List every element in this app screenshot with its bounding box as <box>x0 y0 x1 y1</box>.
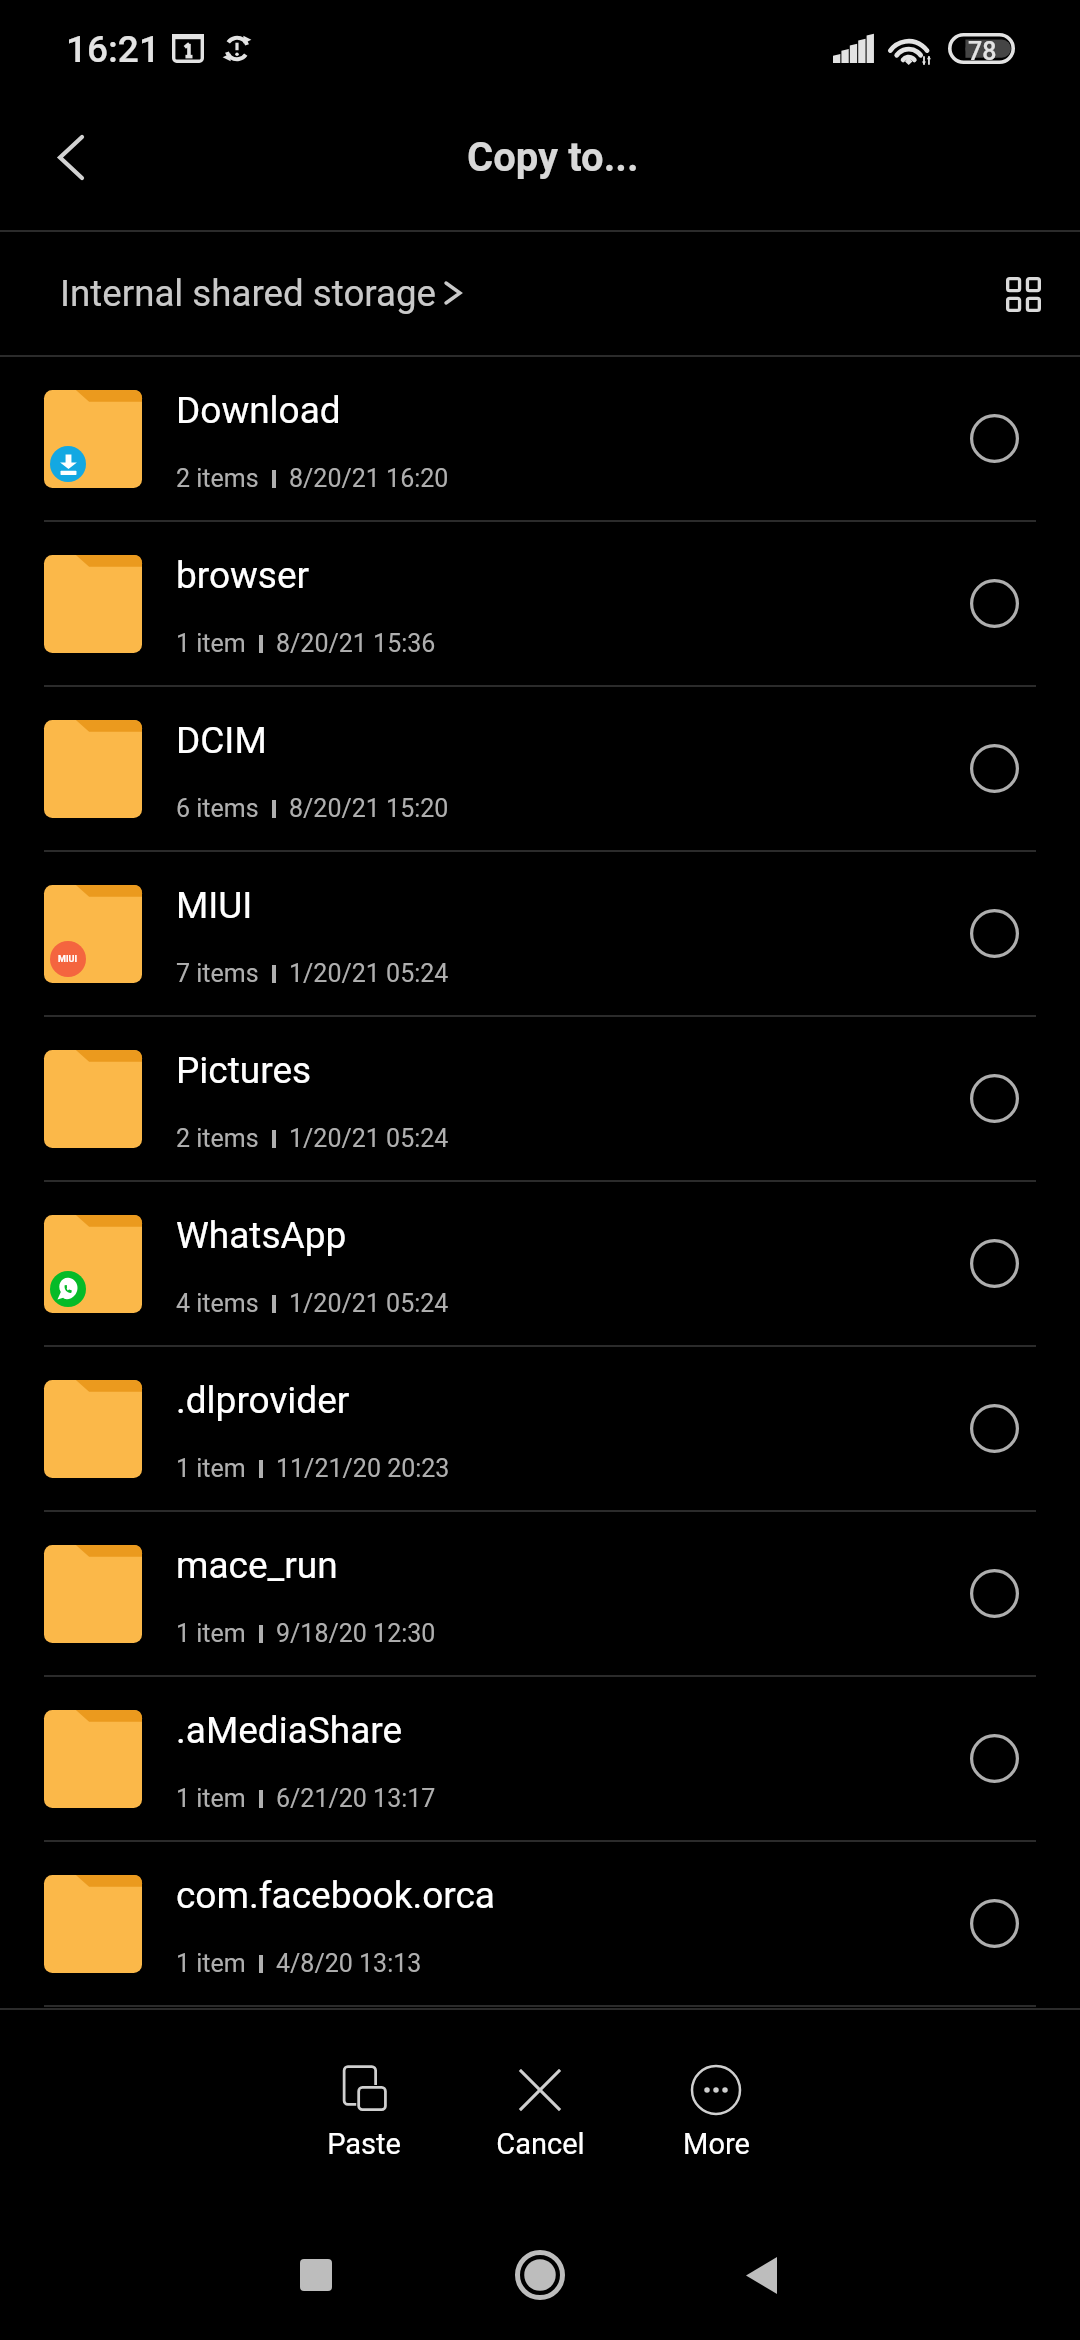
staticText: 78 <box>968 37 997 66</box>
button[interactable]: More <box>641 2010 791 2161</box>
staticText: .dlprovider <box>176 1379 350 1422</box>
staticText: 6 items <box>176 794 259 823</box>
staticText: More <box>683 2127 750 2161</box>
staticText: 1 item <box>176 1454 246 1483</box>
staticText: 8/20/21 15:36 <box>276 629 436 658</box>
button[interactable]: Pictures <box>0 1017 1080 1180</box>
button[interactable]: .aMediaShare <box>0 1677 1080 1840</box>
button[interactable]: com.facebook.orca <box>0 1842 1080 2005</box>
staticText: 4/8/20 13:13 <box>276 1949 422 1978</box>
button[interactable]: Recents <box>266 2225 366 2325</box>
staticText: Cancel <box>496 2127 585 2161</box>
staticText: 11/21/20 20:23 <box>276 1454 450 1483</box>
button[interactable]: Cancel <box>465 2010 615 2161</box>
staticText: DCIM <box>176 719 267 762</box>
button[interactable]: mace_run <box>0 1512 1080 1675</box>
staticText: 2 items <box>176 1124 259 1153</box>
button[interactable]: WhatsApp <box>0 1182 1080 1345</box>
staticText: com.facebook.orca <box>176 1874 495 1917</box>
staticText: browser <box>176 554 310 597</box>
staticText: .aMediaShare <box>176 1709 403 1752</box>
staticText: 6/21/20 13:17 <box>276 1784 436 1813</box>
button[interactable]: browser <box>0 522 1080 685</box>
staticText: 1 item <box>176 629 246 658</box>
staticText: mace_run <box>176 1544 338 1587</box>
staticText: 1/20/21 05:24 <box>289 959 449 988</box>
button[interactable]: DCIM <box>0 687 1080 850</box>
staticText: Download <box>176 389 341 432</box>
button[interactable]: Select Download <box>908 357 1080 520</box>
button[interactable]: Home <box>490 2225 590 2325</box>
staticText: Internal shared storage <box>60 272 437 315</box>
staticText: 9/18/20 12:30 <box>276 1619 436 1648</box>
staticText: 1/20/21 05:24 <box>289 1289 449 1318</box>
button[interactable]: Download <box>0 357 1080 520</box>
button[interactable]: Paste <box>289 2010 439 2161</box>
button[interactable]: Select Pictures <box>908 1017 1080 1180</box>
staticText: 16:21 <box>66 28 160 71</box>
button[interactable]: Select WhatsApp <box>908 1182 1080 1345</box>
staticText: 1 item <box>176 1619 246 1648</box>
staticText: Copy to... <box>467 134 639 181</box>
staticText: 1 item <box>176 1784 246 1813</box>
button[interactable]: Select DCIM <box>908 687 1080 850</box>
button[interactable]: Select browser <box>908 522 1080 685</box>
staticText: 8/20/21 15:20 <box>289 794 449 823</box>
button[interactable]: MIUI <box>0 852 1080 1015</box>
staticText: 1/20/21 05:24 <box>289 1124 449 1153</box>
staticText: MIUI <box>176 884 253 927</box>
staticText: 4 items <box>176 1289 259 1318</box>
button[interactable]: Internal shared storage <box>38 256 478 331</box>
button[interactable]: .dlprovider <box>0 1347 1080 1510</box>
button[interactable]: Select .aMediaShare <box>908 1677 1080 1840</box>
button[interactable]: Back <box>711 2225 811 2325</box>
staticText: 8/20/21 16:20 <box>289 464 449 493</box>
staticText: 1 item <box>176 1949 246 1978</box>
staticText: MIUI <box>58 954 78 965</box>
staticText: WhatsApp <box>176 1214 347 1257</box>
staticText: 2 items <box>176 464 259 493</box>
staticText: 7 items <box>176 959 259 988</box>
button[interactable]: Back <box>21 107 121 207</box>
button[interactable]: Select mace_run <box>908 1512 1080 1675</box>
staticText: Pictures <box>176 1049 312 1092</box>
button[interactable]: Select com.facebook.orca <box>908 1842 1080 2005</box>
button[interactable]: Select MIUI <box>908 852 1080 1015</box>
staticText: Paste <box>327 2127 401 2161</box>
button[interactable]: Select .dlprovider <box>908 1347 1080 1510</box>
button[interactable]: Switch to grid view <box>981 252 1065 336</box>
